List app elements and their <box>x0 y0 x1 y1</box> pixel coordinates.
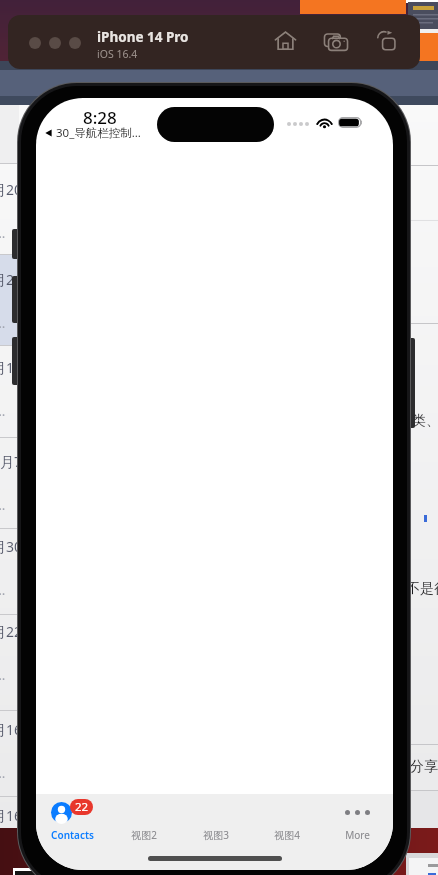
staticText: … <box>0 581 6 599</box>
staticText: … <box>0 666 6 684</box>
staticText: 2022年8月30 <box>0 537 22 556</box>
button[interactable]: More <box>322 794 393 842</box>
button[interactable]: 视图3 <box>180 794 251 842</box>
button[interactable]: 视图2 <box>108 794 180 842</box>
staticText: 2022年5月16 <box>0 806 22 825</box>
button[interactable]: Screenshot <box>321 25 351 55</box>
button[interactable]: Window control <box>49 37 61 49</box>
staticText: 8:28 <box>83 106 117 129</box>
button[interactable]: Window control <box>29 37 41 49</box>
staticText: … <box>0 314 6 332</box>
staticText: 视图3 <box>203 828 229 842</box>
staticText: 2022年9月7 <box>0 452 22 471</box>
staticText: More <box>345 828 370 842</box>
staticText: 分享 <box>410 758 438 776</box>
staticText: 2022年11月21 <box>0 270 22 289</box>
button[interactable]: Home <box>270 25 300 55</box>
staticText: … <box>0 224 6 242</box>
staticText: … <box>0 496 6 514</box>
button[interactable]: Window control <box>69 37 81 49</box>
button[interactable]: 22 <box>36 794 108 842</box>
staticText: 2022年6月16 <box>0 720 22 739</box>
button[interactable]: Side button <box>408 338 415 428</box>
button[interactable]: Volume up <box>12 276 20 323</box>
staticText: 不是行 <box>406 580 438 598</box>
button[interactable]: Rotate <box>372 25 402 55</box>
staticText: 22 <box>75 799 89 815</box>
button[interactable]: 30_导航栏控制… <box>45 125 141 141</box>
staticText: … <box>0 402 6 420</box>
staticText: … <box>0 764 6 782</box>
staticText: Contacts <box>51 828 94 842</box>
staticText: 2022年10月14 <box>0 358 22 377</box>
staticText: iOS 16.4 <box>97 47 138 61</box>
button[interactable]: Volume down <box>12 337 20 385</box>
staticText: iPhone 14 Pro <box>97 28 189 46</box>
staticText: 视图2 <box>131 828 157 842</box>
staticText: 2022年7月22 <box>0 622 22 641</box>
button[interactable]: Ring/Silent switch <box>12 229 20 259</box>
staticText: 2022年12月20 <box>0 180 22 199</box>
staticText: 30_导航栏控制… <box>56 125 141 141</box>
staticText: 类、 <box>412 412 438 430</box>
button[interactable]: 视图4 <box>251 794 322 842</box>
staticText: 视图4 <box>274 828 300 842</box>
